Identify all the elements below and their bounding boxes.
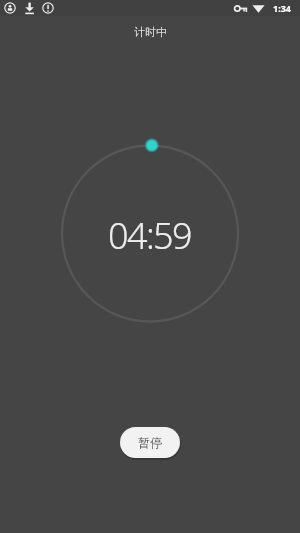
staticText: 计时中 <box>134 25 167 39</box>
staticText: 暂停 <box>138 435 162 450</box>
button[interactable]: 暂停 <box>120 427 180 458</box>
staticText: 1:34 <box>273 2 291 14</box>
staticText: 04:59 <box>108 211 192 255</box>
